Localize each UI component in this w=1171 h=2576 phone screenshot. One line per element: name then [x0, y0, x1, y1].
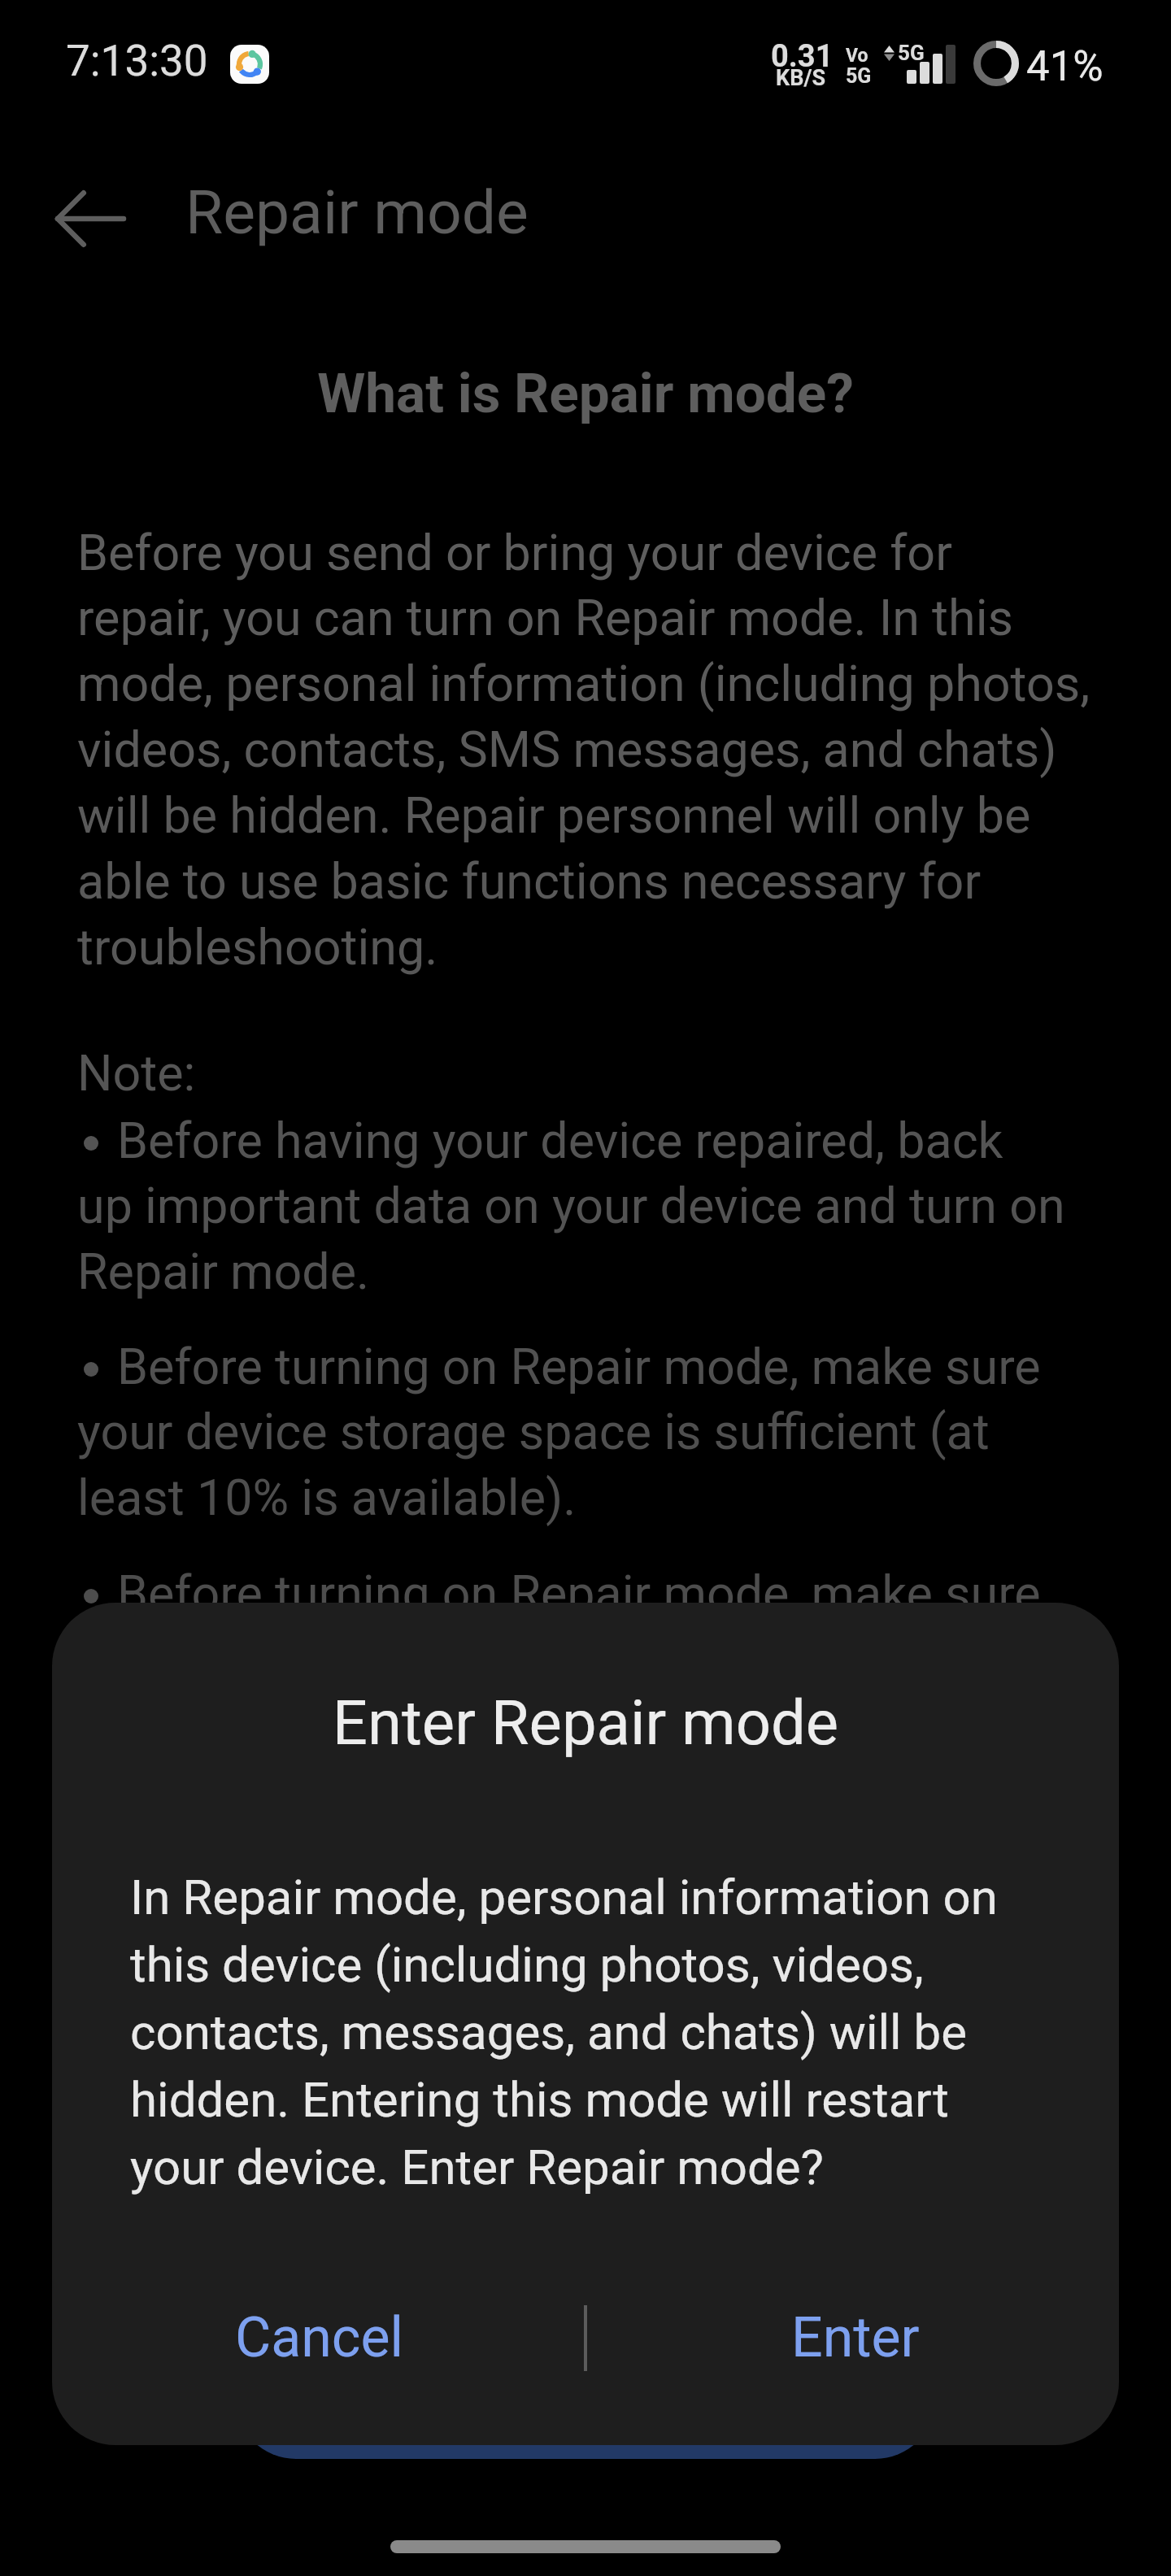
staticText: Enter	[791, 2305, 920, 2370]
staticText: What is Repair mode?	[0, 361, 1171, 425]
staticText: 41%	[1026, 42, 1104, 91]
staticText: KB/S	[776, 65, 826, 91]
button[interactable]: Enter	[585, 2265, 1119, 2411]
staticText: Before turning on Repair mode, make sure…	[77, 1564, 1067, 1688]
staticText: 5G	[898, 41, 925, 65]
staticText: Before having your device repaired, back…	[77, 1112, 1067, 1301]
staticText: 7:13:30	[66, 36, 208, 86]
staticText: 5G	[846, 64, 872, 88]
staticText: 0.31	[771, 38, 834, 75]
button[interactable]: Back	[37, 166, 143, 272]
staticText: Before turning on Repair mode, make sure…	[77, 1338, 1067, 1527]
staticText: Repair mode	[185, 176, 529, 248]
staticText: In Repair mode, personal information on …	[130, 1869, 1037, 2195]
staticText: Before you send or bring your device for…	[77, 524, 1094, 977]
staticText: Cancel	[235, 2305, 403, 2370]
button[interactable]	[235, 2337, 936, 2459]
staticText: Enter Repair mode	[52, 1686, 1119, 1759]
button[interactable]: Cancel	[52, 2265, 585, 2411]
staticText: Note:	[77, 1044, 1094, 1102]
staticText: Vo	[846, 45, 868, 67]
